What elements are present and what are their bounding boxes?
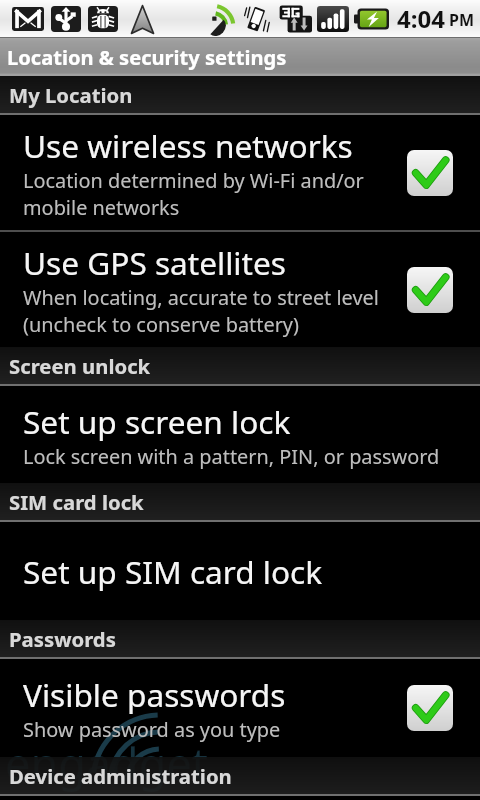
staticText: Passwords [9,625,116,653]
staticText: Set up screen lock [23,400,291,443]
staticText: SIM card lock [9,488,144,516]
button[interactable]: Set up SIM card lock [0,522,480,620]
button[interactable]: Set up screen lock [0,386,480,483]
staticText: PM [449,9,475,31]
staticText: Screen unlock [9,352,151,380]
staticText: My Location [9,81,133,109]
staticText: Use GPS satellites [23,241,286,284]
staticText: engadget [5,733,209,794]
button[interactable]: Toggle Use wireless networks [407,150,453,196]
button[interactable]: Use wireless networks [0,115,480,230]
staticText: (uncheck to conserve battery) [23,311,299,338]
staticText: When locating, accurate to street level [23,284,379,311]
button[interactable]: Toggle Use GPS satellites [407,267,453,313]
staticText: 4:04 [397,2,445,35]
staticText: Visible passwords [23,673,286,716]
button[interactable]: Use GPS satellites [0,232,480,347]
staticText: Show password as you type [23,716,281,743]
staticText: Use wireless networks [23,124,353,167]
staticText: Device administration [9,762,232,790]
staticText: Lock screen with a pattern, PIN, or pass… [23,443,440,470]
staticText: Location determined by Wi-Fi and/or [23,167,364,194]
button[interactable]: Visible passwords [0,659,480,757]
staticText: Location & security settings [7,44,287,71]
staticText: mobile networks [23,194,180,221]
button[interactable]: Toggle Visible passwords [407,685,453,731]
staticText: Set up SIM card lock [23,550,323,593]
